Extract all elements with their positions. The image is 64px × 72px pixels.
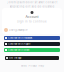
staticText: Continue with Facebook [8,36,32,39]
staticText: Lorem ipsum dolor sit amet consect [6,1,57,4]
staticText: user@example [9,28,28,32]
button[interactable]: Continue with Facebook [4,36,60,40]
staticText: Continue with Email [8,48,30,51]
button[interactable]: Continue with Apple [4,42,60,46]
staticText: Sign in to continue [17,20,47,23]
staticText: Continue with Apple [8,42,30,45]
staticText: Account [25,15,38,19]
staticText: adipiscing elit sed do eiusmod [9,5,54,8]
staticText: Terms Privacy Help [20,64,43,67]
staticText: Get the app [9,56,21,59]
button[interactable]: Get the app [5,56,59,60]
button[interactable]: Continue with Email [4,48,60,52]
